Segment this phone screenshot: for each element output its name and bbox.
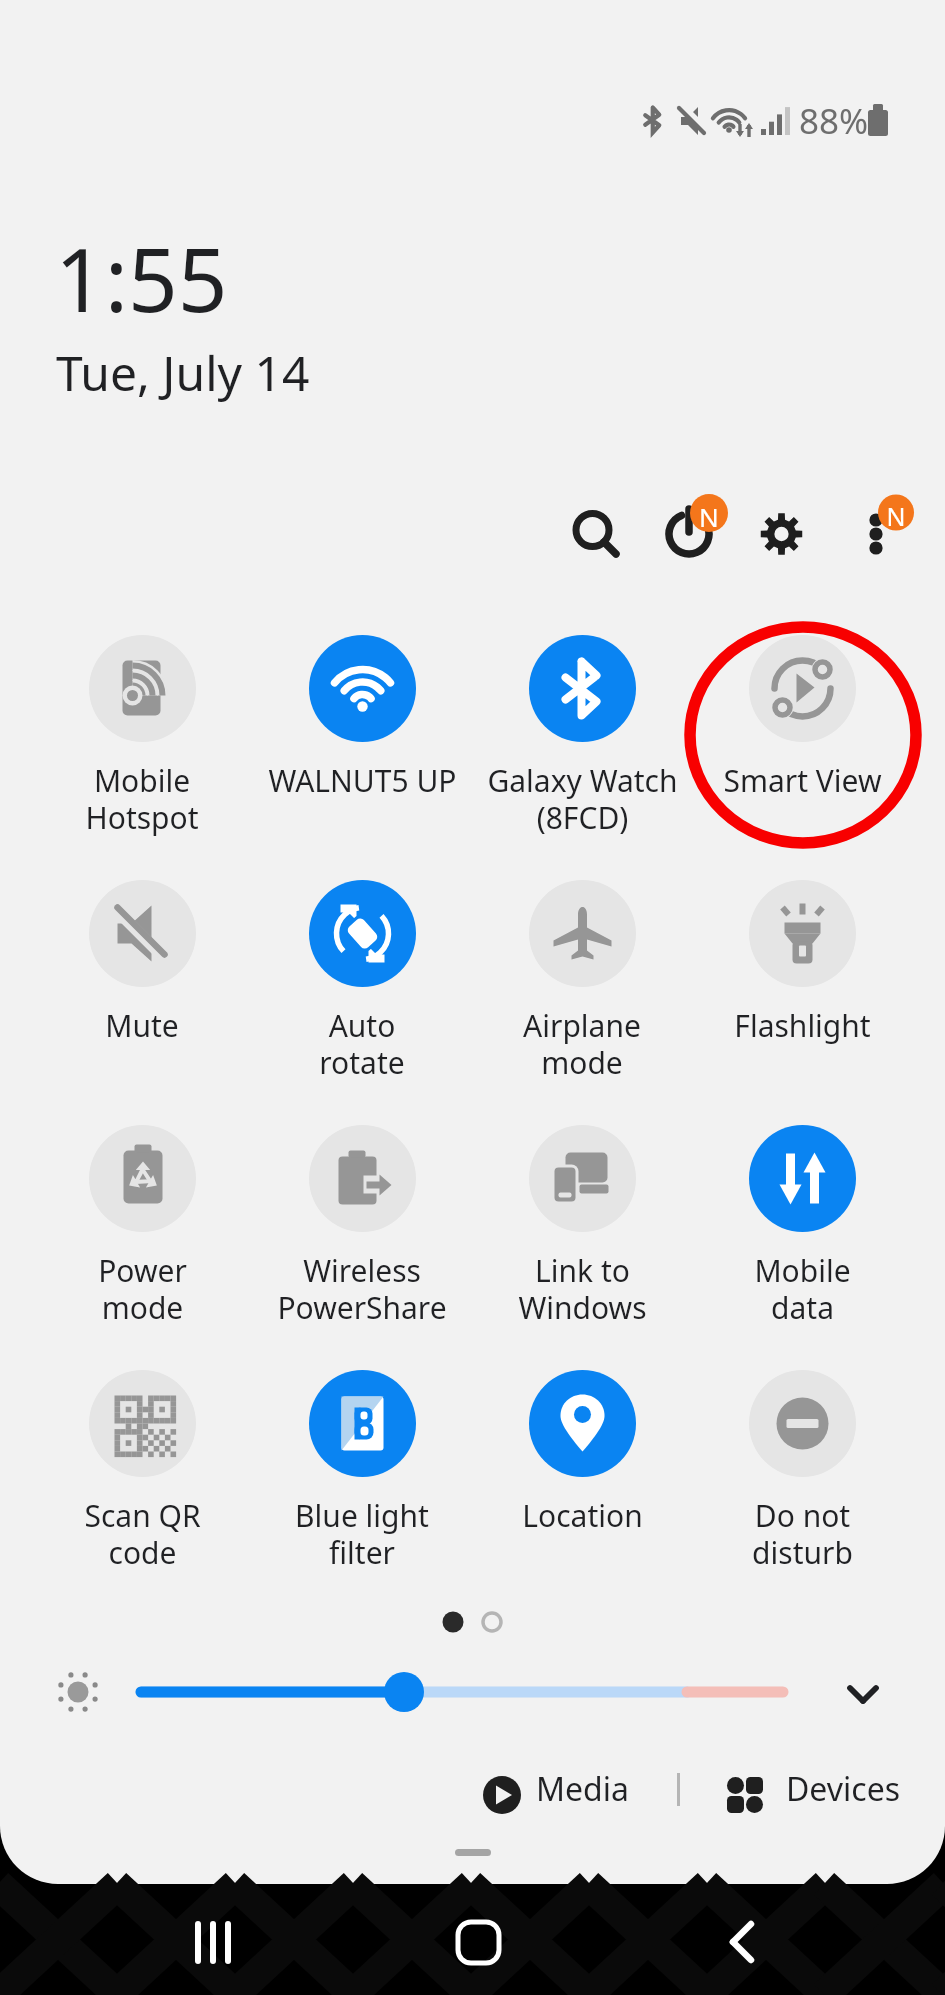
button[interactable]: Back — [682, 1902, 802, 1995]
button[interactable]: Location — [474, 1370, 690, 1536]
staticText: N — [886, 499, 906, 533]
button[interactable]: Mute — [34, 880, 250, 1046]
staticText: Mobile Hotspot — [85, 760, 199, 838]
button[interactable]: Devices — [724, 1765, 901, 1809]
staticText: Location — [522, 1495, 643, 1536]
staticText: WALNUT5 UP — [268, 760, 457, 801]
button[interactable]: Power — [644, 489, 736, 581]
staticText: Smart View — [723, 760, 882, 801]
button[interactable]: Search — [547, 485, 639, 577]
staticText: Auto rotate — [319, 1005, 405, 1083]
staticText: Airplane mode — [523, 1005, 641, 1083]
staticText: Wireless PowerShare — [277, 1250, 447, 1328]
button[interactable]: Media — [475, 1765, 629, 1809]
button[interactable]: Flashlight — [694, 880, 910, 1046]
staticText: 1:55 — [55, 219, 228, 337]
button[interactable]: Scan QR code — [34, 1370, 250, 1573]
staticText: Tue, July 14 — [56, 340, 310, 405]
button[interactable]: Smart View — [694, 635, 910, 801]
staticText: Do not disturb — [752, 1495, 853, 1573]
button[interactable]: Link to Windows — [474, 1125, 690, 1328]
staticText: 88% — [799, 97, 869, 145]
button[interactable]: WALNUT5 UP — [254, 635, 470, 801]
staticText: N — [699, 499, 719, 534]
button[interactable]: Mobile data — [694, 1125, 910, 1328]
staticText: Link to Windows — [518, 1250, 647, 1328]
button[interactable]: Power mode — [34, 1125, 250, 1328]
staticText: Power mode — [98, 1250, 187, 1328]
button[interactable]: Galaxy Watch (8FCD) — [474, 635, 690, 838]
button[interactable]: Expand — [826, 1658, 894, 1726]
button[interactable]: Auto rotate — [254, 880, 470, 1083]
staticText: Devices — [786, 1767, 901, 1811]
button[interactable]: Brightness — [40, 1654, 810, 1730]
staticText: Flashlight — [734, 1005, 871, 1046]
button[interactable]: More options — [831, 489, 923, 581]
staticText: Mute — [105, 1005, 179, 1046]
staticText: Blue light filter — [295, 1495, 429, 1573]
staticText: Galaxy Watch (8FCD) — [487, 760, 678, 838]
button[interactable]: Blue light filter — [254, 1370, 470, 1573]
button[interactable]: Recents — [153, 1902, 273, 1995]
button[interactable]: Settings — [736, 489, 828, 581]
button[interactable]: Airplane mode — [474, 880, 690, 1083]
staticText: Scan QR code — [84, 1495, 201, 1573]
button[interactable]: Home — [418, 1902, 538, 1995]
button[interactable]: Mobile Hotspot — [34, 635, 250, 838]
button[interactable]: Do not disturb — [694, 1370, 910, 1573]
staticText: Media — [536, 1767, 629, 1811]
staticText: Mobile data — [754, 1250, 851, 1328]
button[interactable]: Page 2 — [474, 1604, 510, 1640]
button[interactable]: Page 1 — [435, 1604, 471, 1640]
button[interactable]: Wireless PowerShare — [254, 1125, 470, 1328]
